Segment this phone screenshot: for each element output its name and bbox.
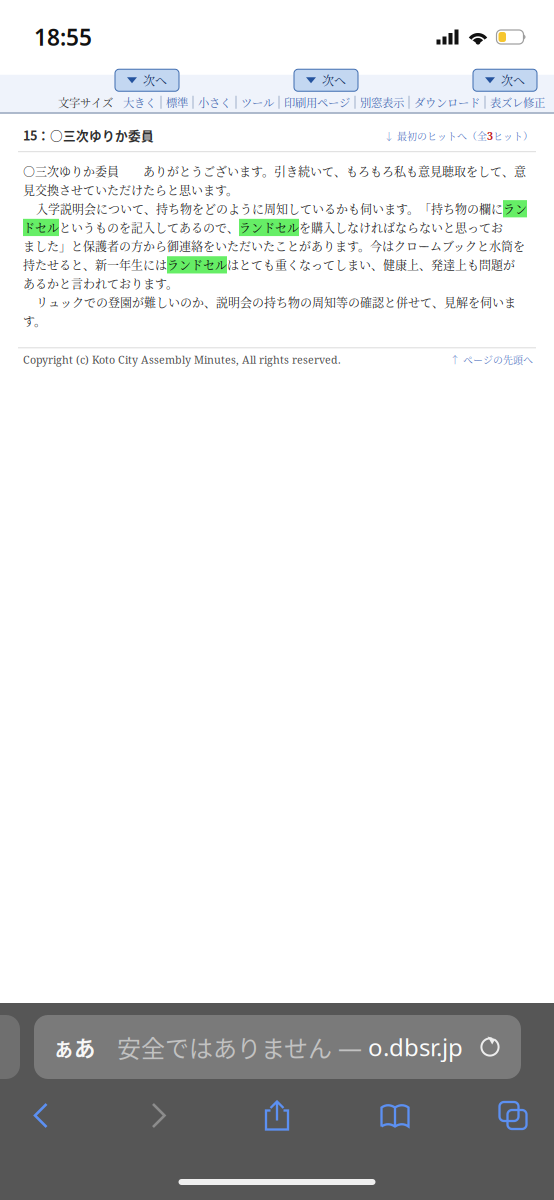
button[interactable]: ダウンロード — [414, 94, 480, 110]
staticText: ランドセル — [167, 256, 227, 273]
button[interactable]: 次へ — [473, 69, 537, 91]
staticText: ○三次ゆりか委員 ありがとうございます。引き続いて、もろもろ私も意見聴取をして、… — [23, 163, 526, 180]
button[interactable]: ↑ ページの先頭へ — [450, 352, 533, 367]
button[interactable]: ツール — [241, 94, 274, 110]
staticText: 印刷用ページ — [284, 94, 350, 110]
staticText: ラン — [503, 200, 527, 217]
staticText: 次へ — [143, 72, 167, 89]
staticText: ↑ ページの先頭へ — [450, 352, 533, 367]
button[interactable]: Forward — [149, 1102, 168, 1129]
button[interactable]: 印刷用ページ — [284, 94, 350, 110]
button[interactable]: 別窓表示 — [360, 94, 404, 110]
button[interactable]: 標準 — [166, 94, 188, 110]
button[interactable]: ↓ 最初のヒットへ（全 — [384, 129, 533, 143]
staticText: あるかと言われております。 — [23, 275, 178, 292]
staticText: 標準 — [166, 94, 188, 110]
button[interactable]: 次へ — [294, 69, 358, 91]
staticText: ドセル — [23, 219, 59, 236]
staticText: 見交換させていただけたらと思います。 — [23, 181, 238, 199]
staticText: 小さく — [198, 94, 231, 110]
staticText: はとても重くなってしまい、健康上、発達上も問題が — [227, 256, 515, 273]
staticText: — — [332, 1031, 368, 1063]
staticText: 表ズレ修正 — [490, 94, 545, 110]
button[interactable]: ぁあ — [34, 1015, 521, 1079]
staticText: リュックでの登園が難しいのか、説明会の持ち物の周知等の確認と併せて、見解を伺いま — [36, 294, 516, 311]
button[interactable]: Bookmarks — [380, 1102, 410, 1128]
staticText: というものを記入してあるので、 — [59, 219, 239, 236]
staticText: 3 — [487, 129, 493, 143]
button[interactable]: Back — [31, 1102, 50, 1129]
button[interactable]: Tabs — [499, 1101, 527, 1129]
staticText: 文字サイズ — [58, 94, 113, 110]
staticText: を購入しなければならないと思ってお — [299, 219, 503, 236]
staticText: 大きく — [123, 94, 156, 110]
button[interactable]: Share — [263, 1099, 291, 1131]
staticText: 安全ではありません — [117, 1030, 332, 1064]
button[interactable]: 表ズレ修正 — [490, 94, 545, 110]
staticText: Copyright (c) Koto City Assembly Minutes… — [23, 352, 341, 367]
staticText: 15：○三次ゆりか委員 — [23, 126, 154, 144]
button[interactable]: 次へ — [115, 69, 179, 91]
button[interactable]: Reload — [479, 1035, 502, 1058]
button[interactable]: 大きく — [123, 94, 156, 110]
staticText: ツール — [241, 94, 274, 110]
staticText: ダウンロード — [414, 94, 480, 110]
staticText: o.dbsr.jp — [368, 1031, 463, 1063]
staticText: す。 — [23, 312, 46, 329]
staticText: 18:55 — [34, 22, 92, 52]
staticText: 次へ — [501, 72, 525, 89]
staticText: ランドセル — [239, 219, 299, 236]
staticText: ヒット） — [493, 129, 533, 143]
staticText: 別窓表示 — [360, 94, 404, 110]
staticText: ました」と保護者の方から御連絡をいただいたことがあります。今はクロームブックと水… — [23, 237, 525, 255]
staticText: 次へ — [322, 72, 346, 89]
staticText: 持たせると、新一年生には — [23, 256, 167, 273]
button[interactable]: 小さく — [198, 94, 231, 110]
staticText: ぁあ — [53, 1032, 95, 1062]
staticText: ↓ 最初のヒットへ（全 — [384, 129, 487, 143]
staticText: 入学説明会について、持ち物をどのように周知しているかも伺います。「持ち物の欄に — [36, 200, 503, 217]
